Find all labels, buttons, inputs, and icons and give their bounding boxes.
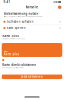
staticText: Startseite (25, 5, 38, 9)
staticText: Karte direkt aktivieren (2, 63, 36, 67)
staticText: Karte sperren (7, 26, 26, 30)
staticText: Karte plus (4, 52, 19, 56)
staticText: In nur wenigen Schritten startklar (2, 67, 24, 68)
staticText: Globalwärmung nutzen (3, 12, 38, 15)
button[interactable]: Karte sperren (1, 25, 62, 31)
staticText: Guthaben aufladen (7, 20, 34, 24)
staticText: Meine (4, 51, 8, 52)
staticText: Die aktive Karte in Ihrer Übersicht (2, 38, 24, 40)
staticText: Mit Ihrer Karte jederzeit bezahlen und G… (3, 16, 42, 17)
button[interactable]: Profil (58, 5, 61, 9)
staticText: Karte 3000 (2, 34, 19, 38)
staticText: 9:41 (4, 0, 11, 4)
button[interactable]: Guthaben aufladen (1, 19, 62, 25)
button[interactable]: Jetzt aktivieren (2, 74, 62, 79)
staticText: Jetzt aktivieren (21, 75, 43, 78)
